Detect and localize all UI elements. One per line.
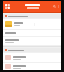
button[interactable]: Search (53, 5, 56, 8)
button[interactable]: Item options (33, 23, 36, 26)
button[interactable] (3, 37, 61, 45)
button[interactable]: More options (57, 5, 60, 8)
button[interactable] (3, 30, 61, 36)
button[interactable]: Menu (4, 3, 11, 10)
button[interactable] (3, 63, 61, 70)
button[interactable] (3, 53, 61, 62)
button[interactable]: Item options (3, 19, 61, 29)
